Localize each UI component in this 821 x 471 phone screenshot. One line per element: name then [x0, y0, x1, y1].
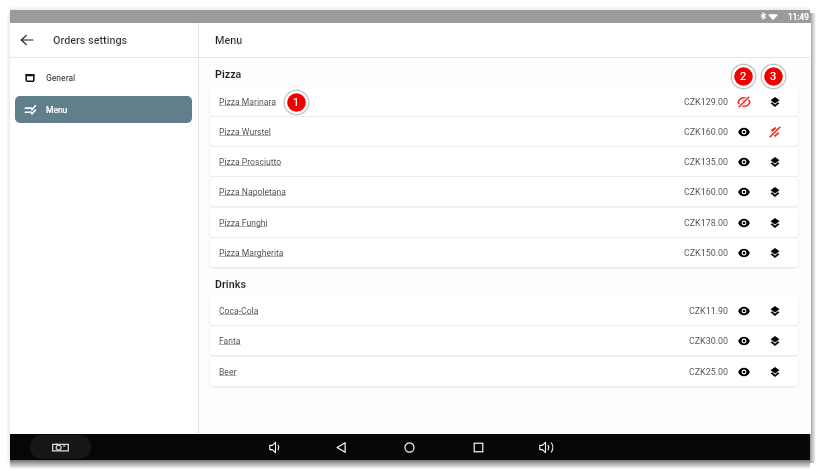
button[interactable]: Show item — [732, 177, 755, 206]
staticText: General — [46, 73, 76, 83]
staticText: CZK135.00 — [684, 157, 729, 167]
staticText: Drinks — [215, 278, 246, 291]
button[interactable]: Coca-Cola — [210, 296, 798, 325]
button[interactable]: Show item — [732, 117, 755, 146]
staticText: Pizza Wurstel — [219, 127, 271, 137]
button[interactable]: Home — [397, 435, 421, 459]
staticText: 11:49 — [788, 12, 809, 22]
button[interactable]: Show item — [732, 147, 755, 176]
staticText: CZK30.00 — [689, 336, 729, 346]
staticText: Orders settings — [53, 34, 128, 47]
button[interactable]: Layers — [763, 238, 786, 267]
staticText: CZK178.00 — [684, 218, 729, 228]
staticText: Beer — [219, 367, 237, 377]
button[interactable]: Pizza Marinara — [210, 87, 798, 116]
staticText: CZK25.00 — [689, 367, 729, 377]
button[interactable]: Volume down — [263, 435, 287, 459]
staticText: 1 — [293, 96, 300, 109]
staticText: Pizza Napoletana — [219, 187, 286, 197]
staticText: CZK160.00 — [684, 127, 729, 137]
button[interactable]: Pizza Margherita — [210, 238, 798, 267]
staticText: Coca-Cola — [219, 306, 259, 316]
button[interactable]: Layers — [763, 208, 786, 237]
button[interactable]: Back — [329, 435, 353, 459]
staticText: Pizza Prosciutto — [219, 157, 282, 167]
button[interactable]: Layers — [763, 87, 786, 116]
button[interactable]: Layers — [763, 147, 786, 176]
staticText: CZK11.90 — [689, 306, 729, 316]
staticText: 2 — [740, 70, 747, 83]
staticText: Menu — [46, 105, 68, 115]
button[interactable]: Screenshot — [30, 435, 91, 459]
staticText: Pizza Marinara — [219, 97, 276, 107]
button[interactable]: Show item — [732, 357, 755, 386]
button[interactable]: Show item — [732, 326, 755, 355]
button[interactable]: Pizza Prosciutto — [210, 147, 798, 176]
staticText: Fanta — [219, 336, 241, 346]
button[interactable]: Layers — [763, 296, 786, 325]
staticText: 3 — [770, 70, 777, 83]
button[interactable]: Fanta — [210, 326, 798, 355]
staticText: Pizza Margherita — [219, 248, 284, 258]
button[interactable]: Show item — [732, 238, 755, 267]
button[interactable]: Layers — [763, 326, 786, 355]
button[interactable]: Volume up — [533, 435, 557, 459]
button[interactable]: Menu — [15, 96, 192, 123]
button[interactable]: Layers — [763, 357, 786, 386]
button[interactable]: Pizza Wurstel — [210, 117, 798, 146]
staticText: CZK150.00 — [684, 248, 729, 258]
button[interactable]: Show item — [732, 208, 755, 237]
button[interactable]: Layers — [763, 177, 786, 206]
button[interactable]: Show item — [732, 296, 755, 325]
button[interactable]: Back — [16, 29, 38, 51]
button[interactable]: Disable layers — [763, 117, 786, 146]
button[interactable]: Beer — [210, 357, 798, 386]
staticText: Menu — [215, 34, 243, 47]
button[interactable]: Pizza Napoletana — [210, 177, 798, 206]
staticText: CZK129.00 — [684, 97, 729, 107]
staticText: Pizza — [215, 68, 242, 81]
button[interactable]: Pizza Funghi — [210, 208, 798, 237]
staticText: CZK160.00 — [684, 187, 729, 197]
button[interactable]: Recents — [466, 435, 490, 459]
staticText: Pizza Funghi — [219, 218, 268, 228]
button[interactable]: Hide item — [732, 87, 755, 116]
button[interactable]: General — [15, 64, 192, 91]
